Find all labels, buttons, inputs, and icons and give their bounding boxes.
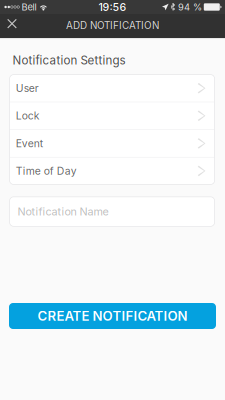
staticText: Bell xyxy=(22,1,37,13)
staticText: 94 % xyxy=(178,1,202,13)
staticText: Event xyxy=(16,137,43,150)
button[interactable]: Close xyxy=(0,14,24,38)
staticText: User xyxy=(16,82,39,94)
staticText: CREATE NOTIFICATION xyxy=(37,308,187,324)
staticText: Notification Name xyxy=(18,205,109,218)
button[interactable]: Time of Day xyxy=(10,157,215,184)
staticText: 19:56 xyxy=(98,0,126,13)
button[interactable]: User xyxy=(10,75,215,102)
staticText: Time of Day xyxy=(16,165,77,177)
staticText: Lock xyxy=(16,109,40,122)
button[interactable]: Event xyxy=(10,130,215,157)
button[interactable]: Lock xyxy=(10,102,215,130)
staticText: Notification Settings xyxy=(13,53,126,67)
button[interactable]: CREATE NOTIFICATION xyxy=(9,303,216,329)
staticText: ADD NOTIFICATION xyxy=(66,19,159,31)
button[interactable]: Notification Name xyxy=(10,197,215,226)
